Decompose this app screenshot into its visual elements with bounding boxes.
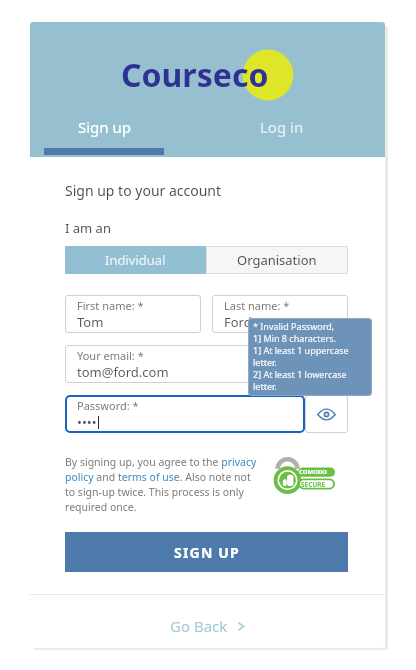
button[interactable]: First name: * xyxy=(65,295,201,333)
button[interactable]: Your email: * xyxy=(65,345,348,383)
staticText: SIGN UP xyxy=(174,543,240,562)
staticText: 1] At least 1 uppercase xyxy=(253,344,349,356)
staticText: Tom xyxy=(77,313,104,331)
button[interactable]: Show password xyxy=(305,395,348,433)
staticText: First name: * xyxy=(77,298,144,313)
staticText: * Invalid Password, xyxy=(253,320,335,332)
staticText: •••• xyxy=(77,413,97,431)
staticText: Log in xyxy=(260,117,304,137)
staticText: SECURE xyxy=(301,480,326,489)
staticText: By signing up, you agree to the privacy … xyxy=(65,455,263,514)
staticText: Sign up xyxy=(78,117,131,137)
staticText: Last name: * xyxy=(224,298,290,313)
button[interactable]: Organisation xyxy=(206,246,348,274)
staticText: 3] At least 1 number. xyxy=(253,392,340,396)
staticText: letter. xyxy=(253,380,277,392)
button[interactable]: Last name: * xyxy=(212,295,348,333)
staticText: Your email: * xyxy=(77,348,144,363)
button[interactable]: SIGN UP xyxy=(65,532,348,572)
staticText: Ford xyxy=(224,313,252,331)
staticText: Password: * xyxy=(77,398,139,413)
staticText: Organisation xyxy=(237,251,317,269)
button[interactable]: Sign up xyxy=(30,113,178,157)
button[interactable]: Individual xyxy=(65,246,206,274)
staticText: Go Back xyxy=(170,616,228,636)
staticText: COMODO xyxy=(299,468,328,476)
button[interactable]: Password: * xyxy=(65,395,305,433)
staticText: Sign up to your account xyxy=(65,181,222,200)
button[interactable]: Go Back xyxy=(30,611,385,641)
staticText: letter. xyxy=(253,356,277,368)
staticText: 2] At least 1 lowercase xyxy=(253,368,347,380)
staticText: 1] Min 8 characters. xyxy=(253,332,336,344)
staticText: Individual xyxy=(105,251,166,269)
staticText: Course xyxy=(121,53,232,97)
button[interactable]: Log in xyxy=(178,113,385,157)
staticText: tom@ford.com xyxy=(77,363,169,381)
staticText: I am an xyxy=(65,219,111,237)
staticText: co xyxy=(232,53,269,97)
